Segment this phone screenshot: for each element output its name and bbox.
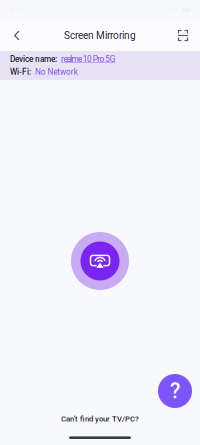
button[interactable]: Scan code — [170, 20, 196, 51]
staticText: realme 10 Pro 5G — [61, 54, 116, 64]
staticText: ? — [170, 378, 180, 403]
staticText: Can't find your TV/PC? — [61, 414, 139, 423]
button[interactable]: Can't find your TV/PC? — [61, 414, 139, 423]
staticText: Wi-Fi: — [10, 67, 31, 77]
button[interactable]: realme 10 Pro 5G — [61, 54, 116, 64]
button[interactable]: Back — [4, 20, 30, 51]
staticText: No Network — [35, 67, 78, 77]
staticText: Screen Mirroring — [64, 30, 136, 41]
staticText: Device name: — [10, 54, 57, 64]
button[interactable]: Help — [158, 374, 192, 408]
button[interactable]: Start screen mirroring — [71, 232, 129, 290]
